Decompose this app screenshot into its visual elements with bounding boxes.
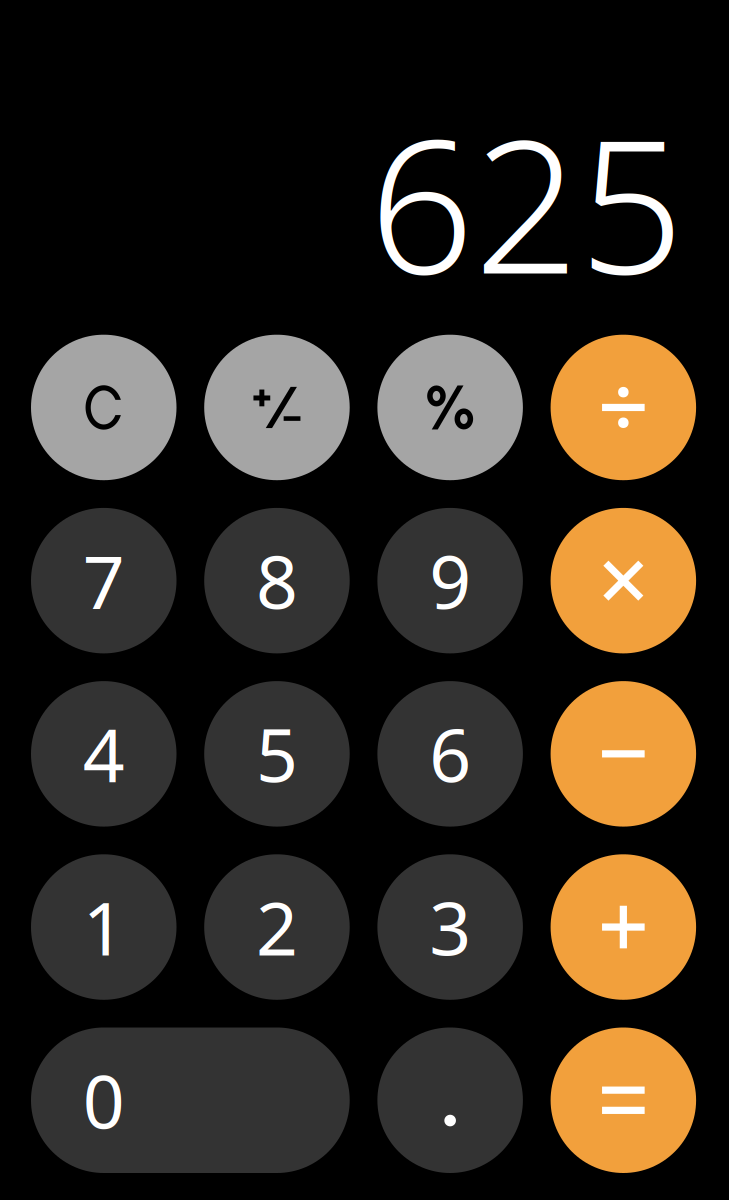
button[interactable]: 7 [31,508,176,653]
staticText: 8 [256,532,298,629]
staticText: 5 [256,705,298,803]
button[interactable]: Decimal point [377,1027,523,1173]
staticText: 625 [369,80,684,324]
staticText: 7 [83,532,125,629]
button[interactable]: Plus minus [204,335,350,480]
button[interactable]: 9 [377,508,523,653]
staticText: 3 [429,878,471,976]
button[interactable]: 3 [377,854,523,1000]
button[interactable]: Multiply [551,508,696,653]
button[interactable]: 8 [204,508,350,653]
button[interactable]: 1 [31,854,176,1000]
button[interactable]: Subtract [551,681,696,827]
staticText: 2 [256,878,298,976]
staticText: 0 [83,1052,125,1149]
button[interactable]: 0 [31,1027,350,1173]
staticText: 1 [83,878,125,976]
button[interactable]: 5 [204,681,350,827]
button[interactable]: Add [551,854,696,1000]
staticText: 9 [429,532,471,629]
button[interactable]: 2 [204,854,350,1000]
staticText: 4 [83,705,125,803]
button[interactable]: Clear [31,335,176,480]
button[interactable]: 4 [31,681,176,827]
button[interactable]: Equals [551,1027,696,1173]
button[interactable]: Percent [377,335,523,480]
staticText: 6 [429,705,471,803]
button[interactable]: 6 [377,681,523,827]
button[interactable]: Divide [551,335,696,480]
